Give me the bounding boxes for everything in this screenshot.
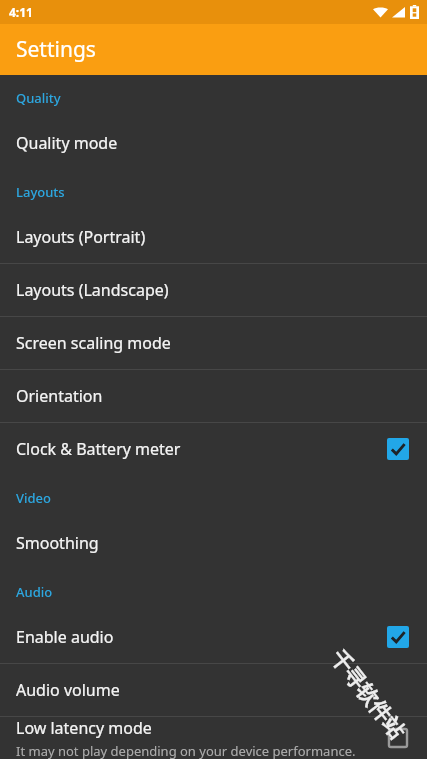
button[interactable]: Checked	[387, 626, 409, 648]
button[interactable]: Layouts (Portrait)	[0, 211, 427, 263]
staticText: 千寻软件站	[325, 646, 410, 744]
staticText: Smoothing	[16, 532, 99, 554]
staticText: Video	[16, 489, 51, 507]
button[interactable]: Audio volume	[0, 664, 427, 716]
button[interactable]: Layouts (Landscape)	[0, 264, 427, 316]
button[interactable]: Low latency mode	[0, 717, 427, 759]
staticText: Audio volume	[16, 679, 120, 701]
staticText: Low latency mode	[16, 717, 152, 739]
button[interactable]: Screen scaling mode	[0, 317, 427, 369]
button[interactable]: Clock & Battery meter	[0, 423, 427, 475]
button[interactable]: Quality mode	[0, 117, 427, 169]
staticText: It may not play depending on your device…	[16, 742, 356, 759]
staticText: Enable audio	[16, 626, 114, 648]
staticText: Quality	[16, 89, 61, 107]
button[interactable]: Orientation	[0, 370, 427, 422]
staticText: Orientation	[16, 385, 103, 407]
staticText: Clock & Battery meter	[16, 438, 181, 460]
staticText: Layouts	[16, 183, 65, 201]
button[interactable]: Enable audio	[0, 611, 427, 663]
staticText: 4:11	[9, 4, 33, 20]
staticText: Layouts (Portrait)	[16, 226, 146, 248]
button[interactable]: Checked	[387, 438, 409, 460]
staticText: Audio	[16, 583, 53, 601]
button[interactable]: Unchecked	[387, 727, 409, 749]
staticText: Screen scaling mode	[16, 332, 171, 354]
staticText: Layouts (Landscape)	[16, 279, 169, 301]
button[interactable]: Smoothing	[0, 517, 427, 569]
staticText: Quality mode	[16, 132, 118, 154]
staticText: Settings	[16, 35, 96, 64]
